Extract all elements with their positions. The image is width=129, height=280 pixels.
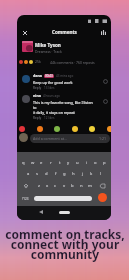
staticText: a: [27, 171, 30, 177]
staticText: n: [80, 183, 83, 189]
button[interactable]: f: [51, 170, 60, 178]
button[interactable]: Space: [34, 196, 92, 201]
staticText: This is my favorite song, like I listen …: [33, 100, 93, 115]
button[interactable]: k: [87, 170, 96, 178]
button[interactable]: Reaction: [19, 126, 25, 132]
button[interactable]: r: [46, 159, 55, 167]
staticText: v: [63, 183, 66, 189]
button[interactable]: p: [100, 159, 109, 167]
button[interactable]: j: [78, 170, 87, 178]
button[interactable]: Reaction: [54, 126, 60, 132]
staticText: r: [50, 160, 52, 166]
staticText: j: [82, 171, 84, 177]
button[interactable]: Reaction: [89, 126, 95, 132]
staticText: comment on tracks, connect with your com…: [5, 226, 125, 263]
staticText: 12 likes: [44, 116, 55, 120]
staticText: e: [40, 160, 43, 166]
staticText: 25k: [35, 59, 41, 64]
staticText: l: [100, 171, 102, 177]
staticText: 43 mins ago: [56, 74, 74, 78]
staticText: Reply: [33, 86, 42, 90]
button[interactable]: v: [60, 182, 69, 190]
button[interactable]: Close: [20, 28, 29, 37]
staticText: 13 likes: [44, 86, 55, 90]
staticText: s: [36, 171, 39, 177]
button[interactable]: nina: [22, 93, 110, 120]
staticText: ?123: [22, 197, 29, 201]
staticText: f: [55, 171, 57, 177]
button[interactable]: Shift: [22, 182, 30, 190]
button[interactable]: e: [37, 159, 46, 167]
button[interactable]: Reaction: [72, 126, 78, 132]
button[interactable]: t: [55, 159, 64, 167]
staticText: 4 hours ago: [43, 94, 60, 98]
staticText: k: [90, 171, 93, 177]
button[interactable]: a: [24, 170, 33, 178]
button[interactable]: u: [73, 159, 82, 167]
staticText: Add a comment at...: [33, 136, 67, 141]
staticText: b: [71, 183, 74, 189]
button[interactable]: l: [96, 170, 105, 178]
button[interactable]: Like: [103, 79, 108, 84]
staticText: nina: [33, 93, 41, 98]
button[interactable]: s: [33, 170, 42, 178]
staticText: h: [72, 171, 75, 177]
button[interactable]: i: [82, 159, 91, 167]
staticText: q: [22, 160, 25, 166]
button[interactable]: q: [19, 159, 28, 167]
staticText: Dreamsss · Track: [35, 49, 62, 54]
button[interactable]: ?123: [20, 195, 30, 202]
button[interactable]: c: [51, 182, 60, 190]
button[interactable]: z: [34, 182, 43, 190]
button[interactable]: m: [85, 182, 94, 190]
staticText: w: [31, 160, 35, 166]
staticText: dana: [33, 73, 42, 78]
staticText: 1:21: [99, 136, 107, 141]
staticText: Keep up the good work: [33, 80, 73, 85]
button[interactable]: dana: [22, 73, 110, 90]
button[interactable]: x: [43, 182, 52, 190]
staticText: Comments: [52, 29, 77, 35]
button[interactable]: Like: [103, 99, 108, 104]
button[interactable]: g: [60, 170, 69, 178]
staticText: c: [54, 183, 57, 189]
staticText: Mike Tyson: [35, 42, 61, 48]
button[interactable]: n: [77, 182, 86, 190]
button[interactable]: Send: [98, 193, 107, 202]
staticText: o: [94, 160, 97, 166]
staticText: m: [88, 183, 92, 189]
staticText: g: [63, 171, 66, 177]
button[interactable]: h: [69, 170, 78, 178]
staticText: y: [67, 160, 70, 166]
staticText: 44k comments · 760 reposts: [50, 60, 95, 65]
button[interactable]: w: [28, 159, 37, 167]
button[interactable]: d: [42, 170, 51, 178]
staticText: t: [59, 160, 61, 166]
staticText: 00:43: [45, 74, 53, 78]
button[interactable]: Add a comment at...: [33, 134, 107, 143]
button[interactable]: Queue: [99, 28, 108, 37]
button[interactable]: b: [68, 182, 77, 190]
staticText: d: [45, 171, 48, 177]
staticText: u: [76, 160, 79, 166]
staticText: Reply: [33, 116, 42, 120]
staticText: z: [38, 183, 40, 189]
staticText: x: [46, 183, 49, 189]
button[interactable]: Reaction: [37, 126, 43, 132]
button[interactable]: Reaction: [107, 126, 111, 132]
button[interactable]: Backspace: [98, 182, 106, 190]
staticText: p: [103, 160, 106, 166]
button[interactable]: y: [64, 159, 73, 167]
staticText: i: [86, 160, 88, 166]
button[interactable]: o: [91, 159, 100, 167]
